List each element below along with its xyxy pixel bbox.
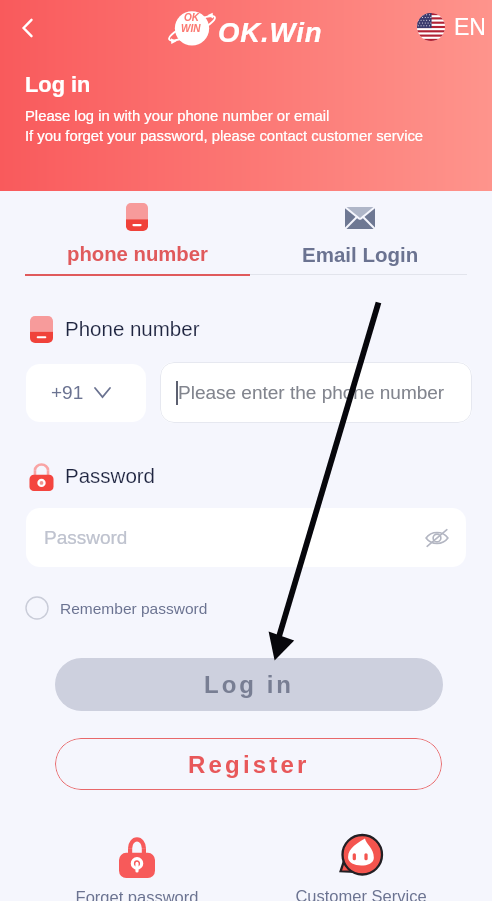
staticText: Log in <box>204 671 294 698</box>
button[interactable]: Please enter the phone number <box>160 362 472 423</box>
staticText: Password <box>65 464 156 487</box>
staticText: Please enter the phone number <box>178 382 445 403</box>
button[interactable]: Log in <box>55 658 443 711</box>
staticText: Phone number <box>65 317 200 340</box>
staticText: Log in <box>25 72 91 96</box>
staticText: EN <box>454 14 486 40</box>
staticText: OK.Win <box>218 17 323 48</box>
button[interactable]: Forget password <box>57 836 217 901</box>
button[interactable]: Back <box>8 8 48 48</box>
staticText: Password <box>44 527 128 548</box>
button[interactable]: Register <box>55 738 442 790</box>
button[interactable]: Customer Service <box>281 835 441 901</box>
staticText: WIN <box>181 23 201 34</box>
staticText: Forget password <box>57 888 217 901</box>
button[interactable]: Show password <box>424 525 450 551</box>
staticText: If you forget your password, please cont… <box>25 128 424 145</box>
staticText: Please log in with your phone number or … <box>25 108 330 125</box>
staticText: +91 <box>51 382 84 403</box>
staticText: Remember password <box>60 600 208 617</box>
staticText: Register <box>188 751 310 778</box>
staticText: phone number <box>67 243 208 266</box>
staticText: Email Login <box>302 243 419 266</box>
staticText: OK <box>184 12 199 23</box>
staticText: Customer Service <box>281 887 441 901</box>
button[interactable]: Remember password <box>25 594 208 622</box>
button[interactable]: +91 <box>26 364 146 422</box>
button[interactable]: Password <box>26 508 466 567</box>
button[interactable]: phone number <box>25 196 250 272</box>
button[interactable]: Email Login <box>250 196 470 272</box>
